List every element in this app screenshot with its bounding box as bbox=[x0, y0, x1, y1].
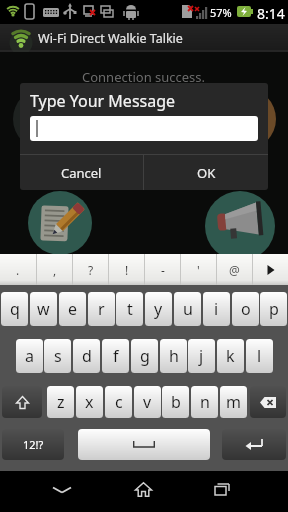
staticText: Cancel bbox=[61, 164, 102, 182]
staticText: k bbox=[226, 345, 235, 367]
button[interactable]: ? bbox=[73, 254, 108, 285]
button[interactable]: - bbox=[145, 254, 180, 285]
button[interactable]: ! bbox=[109, 254, 144, 285]
staticText: Type Your Message bbox=[30, 90, 176, 112]
button[interactable]: q bbox=[1, 292, 28, 326]
button[interactable]: p bbox=[260, 292, 287, 326]
button[interactable]: f bbox=[102, 339, 129, 373]
staticText: 8:14 bbox=[257, 4, 285, 23]
staticText: q bbox=[10, 298, 20, 320]
button[interactable] bbox=[198, 469, 246, 510]
button[interactable]: m bbox=[220, 386, 247, 418]
button[interactable] bbox=[250, 386, 286, 418]
button[interactable] bbox=[78, 429, 210, 460]
staticText: g bbox=[140, 345, 150, 367]
staticText: s bbox=[54, 345, 62, 367]
staticText: i bbox=[214, 298, 219, 320]
staticText: Connection success. bbox=[82, 68, 206, 86]
button[interactable]: 12!? bbox=[2, 429, 64, 460]
button[interactable] bbox=[222, 429, 286, 460]
staticText: o bbox=[241, 298, 251, 320]
button[interactable]: l bbox=[246, 339, 273, 373]
button[interactable] bbox=[2, 386, 42, 418]
button[interactable]: OK bbox=[144, 155, 268, 190]
button[interactable]: s bbox=[44, 339, 71, 373]
button[interactable]: g bbox=[131, 339, 158, 373]
staticText: - bbox=[161, 262, 165, 278]
button[interactable]: v bbox=[134, 386, 161, 418]
staticText: v bbox=[143, 391, 152, 413]
staticText: , bbox=[53, 262, 57, 278]
button[interactable]: b bbox=[162, 386, 189, 418]
button[interactable]: @ bbox=[217, 254, 252, 285]
staticText: n bbox=[200, 391, 210, 413]
staticText: Wi-Fi Direct Walkie Talkie bbox=[38, 30, 183, 47]
staticText: j bbox=[199, 345, 204, 367]
staticText: t bbox=[127, 298, 133, 320]
button[interactable]: j bbox=[188, 339, 215, 373]
button[interactable]: t bbox=[116, 292, 143, 326]
button[interactable]: d bbox=[73, 339, 100, 373]
button[interactable]: n bbox=[191, 386, 218, 418]
staticText: w bbox=[37, 298, 50, 320]
button[interactable]: z bbox=[47, 386, 74, 418]
button[interactable]: i bbox=[203, 292, 230, 326]
button[interactable]: o bbox=[232, 292, 259, 326]
staticText: ! bbox=[125, 262, 129, 278]
button[interactable]: w bbox=[30, 292, 57, 326]
staticText: f bbox=[113, 345, 119, 367]
staticText: OK bbox=[197, 164, 216, 182]
staticText: e bbox=[68, 298, 78, 320]
button[interactable] bbox=[253, 254, 288, 285]
staticText: b bbox=[171, 391, 181, 413]
staticText: @ bbox=[229, 262, 240, 278]
button[interactable] bbox=[38, 469, 86, 510]
staticText: u bbox=[183, 298, 193, 320]
staticText: . bbox=[16, 262, 20, 278]
button[interactable]: ' bbox=[181, 254, 216, 285]
staticText: r bbox=[98, 298, 105, 320]
button[interactable]: k bbox=[217, 339, 244, 373]
button[interactable]: r bbox=[88, 292, 115, 326]
staticText: m bbox=[226, 391, 241, 413]
staticText: x bbox=[85, 391, 94, 413]
button[interactable]: h bbox=[160, 339, 187, 373]
staticText: p bbox=[269, 298, 279, 320]
staticText: 12!? bbox=[23, 437, 44, 452]
staticText: 57% bbox=[210, 5, 232, 20]
staticText: ? bbox=[88, 262, 94, 278]
button[interactable] bbox=[30, 116, 258, 141]
button[interactable]: e bbox=[59, 292, 86, 326]
button[interactable] bbox=[119, 469, 167, 510]
button[interactable]: Cancel bbox=[20, 155, 143, 190]
button[interactable]: u bbox=[174, 292, 201, 326]
button[interactable]: y bbox=[145, 292, 172, 326]
staticText: d bbox=[82, 345, 92, 367]
staticText: ' bbox=[197, 262, 200, 278]
staticText: y bbox=[154, 298, 163, 320]
button[interactable]: a bbox=[16, 339, 43, 373]
staticText: a bbox=[25, 345, 34, 367]
button[interactable]: c bbox=[105, 386, 132, 418]
staticText: l bbox=[257, 345, 262, 367]
staticText: c bbox=[115, 391, 123, 413]
button[interactable]: . bbox=[0, 254, 36, 285]
staticText: z bbox=[57, 391, 65, 413]
staticText: h bbox=[169, 345, 179, 367]
button[interactable]: , bbox=[37, 254, 72, 285]
button[interactable]: x bbox=[76, 386, 103, 418]
